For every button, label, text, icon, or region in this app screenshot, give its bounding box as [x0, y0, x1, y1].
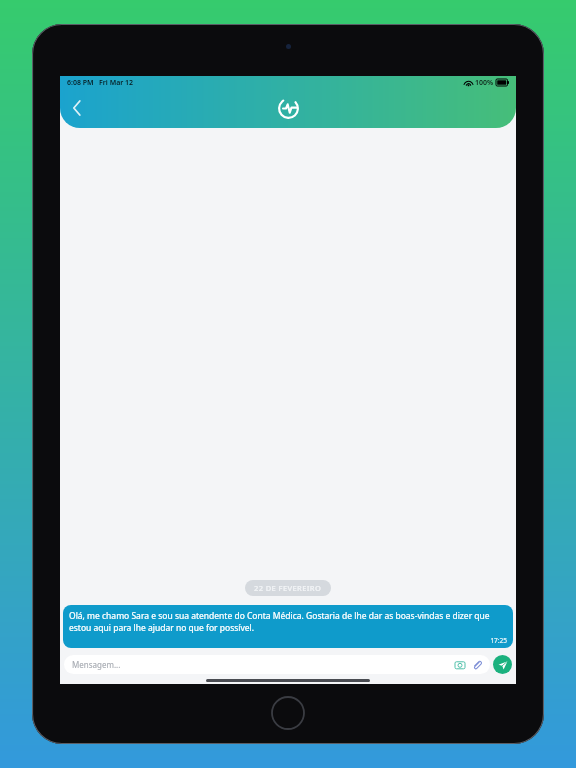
button[interactable]: Attach file: [470, 658, 484, 672]
staticText: 17:25: [490, 636, 507, 645]
staticText: Olá, me chamo Sara e sou sua atendente d…: [69, 610, 507, 634]
button[interactable]: Back: [60, 91, 94, 125]
staticText: Mensagem...: [72, 659, 121, 670]
button[interactable]: Send: [493, 655, 512, 674]
staticText: 6:08 PM Fri Mar 12: [67, 78, 134, 88]
button[interactable]: Mensagem...: [64, 655, 490, 674]
button[interactable]: Olá, me chamo Sara e sou sua atendente d…: [63, 605, 513, 648]
button[interactable]: Camera: [453, 658, 467, 672]
staticText: 22 DE FEVEREIRO: [254, 583, 322, 593]
button[interactable]: Conta Médica logo: [271, 91, 305, 125]
staticText: 100%: [475, 78, 494, 88]
